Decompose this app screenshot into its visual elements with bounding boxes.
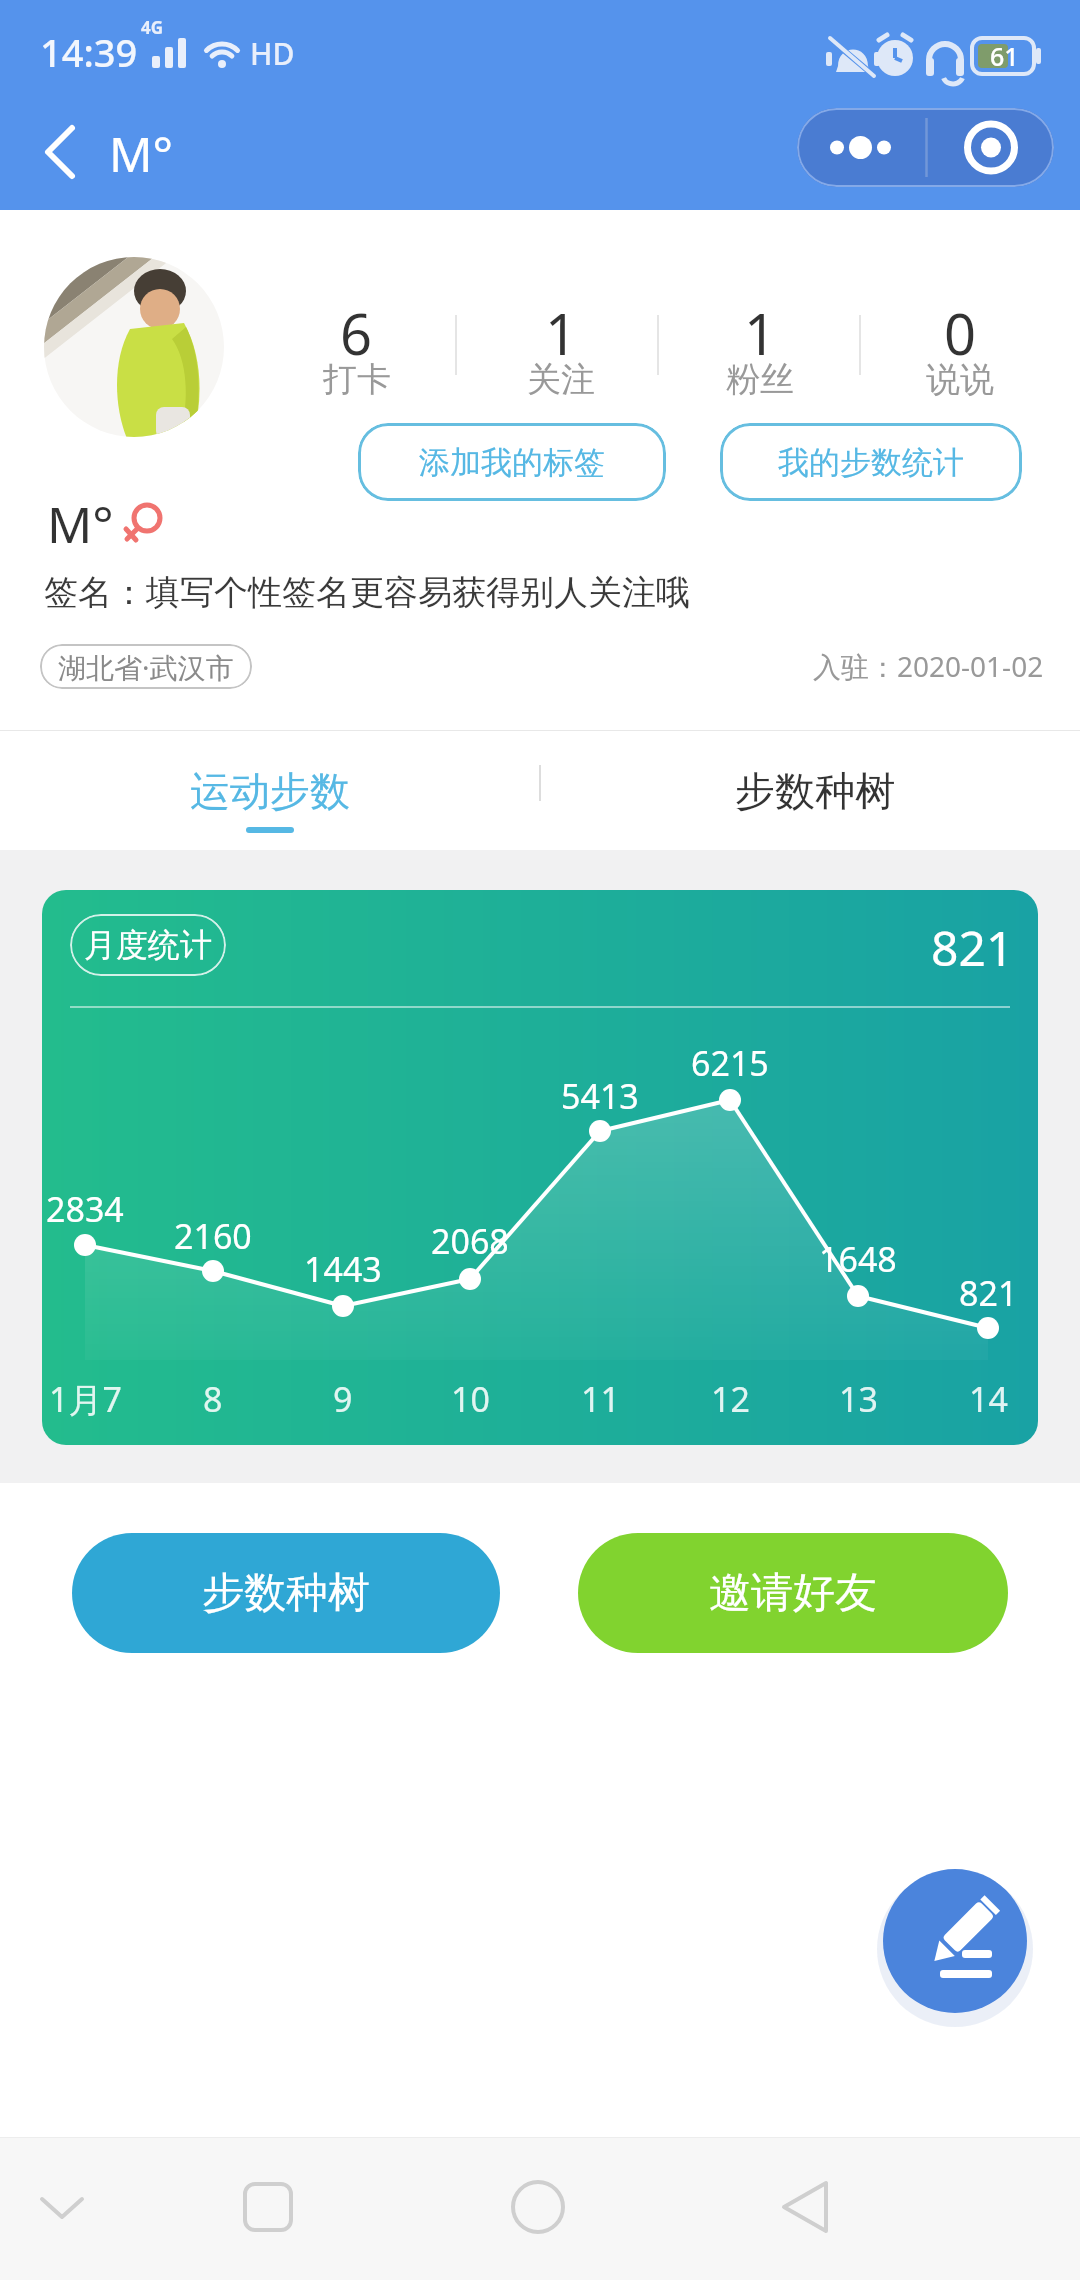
button[interactable]: 我的步数统计 — [720, 423, 1022, 501]
staticText: 1 — [545, 295, 578, 365]
button[interactable]: 步数种树 — [72, 1533, 500, 1653]
staticText: 61 — [990, 39, 1019, 73]
staticText: 我的步数统计 — [778, 443, 964, 482]
staticText: 1443 — [304, 1246, 382, 1290]
staticText: 13 — [839, 1376, 878, 1420]
staticText: 步数种树 — [202, 1567, 370, 1620]
button[interactable] — [810, 2137, 1080, 2280]
staticText: 关注 — [527, 358, 595, 401]
button[interactable] — [270, 2137, 540, 2280]
staticText: 2068 — [431, 1218, 509, 1262]
staticText: HD — [250, 33, 295, 73]
button[interactable] — [40, 122, 84, 182]
staticText: 821 — [931, 915, 1014, 979]
staticText: 5413 — [561, 1073, 639, 1117]
staticText: 1648 — [819, 1236, 897, 1280]
staticText: 邀请好友 — [709, 1567, 877, 1620]
staticText: 14 — [969, 1376, 1008, 1420]
staticText: 入驻：2020-01-02 — [813, 647, 1044, 685]
button[interactable]: 邀请好友 — [578, 1533, 1008, 1653]
button[interactable]: 步数种树 — [540, 731, 1080, 850]
staticText: 14:39 — [40, 26, 138, 78]
staticText: 打卡 — [323, 358, 391, 401]
button[interactable] — [540, 2137, 810, 2280]
button[interactable] — [883, 1869, 1027, 2013]
button[interactable]: 运动步数 — [0, 731, 540, 850]
button[interactable] — [925, 108, 1054, 187]
staticText: 1月7 — [49, 1376, 122, 1420]
button[interactable]: 添加我的标签 — [358, 423, 666, 501]
staticText: 0 — [944, 295, 977, 365]
button[interactable] — [797, 108, 925, 187]
staticText: 8 — [203, 1376, 223, 1420]
staticText: 821 — [959, 1270, 1018, 1314]
staticText: 6215 — [691, 1040, 769, 1084]
staticText: 12 — [711, 1376, 750, 1420]
staticText: 2834 — [46, 1186, 124, 1230]
staticText: M° — [109, 121, 174, 181]
staticText: 说说 — [926, 358, 994, 401]
staticText: 签名：填写个性签名更容易获得别人关注哦 — [44, 571, 690, 614]
button[interactable] — [0, 2137, 270, 2280]
staticText: 4G — [141, 16, 164, 39]
staticText: 11 — [581, 1376, 620, 1420]
staticText: 添加我的标签 — [419, 443, 605, 482]
staticText: 粉丝 — [726, 358, 794, 401]
staticText: 6 — [340, 295, 373, 365]
staticText: 步数种树 — [735, 766, 895, 816]
staticText: 运动步数 — [190, 766, 350, 816]
staticText: 湖北省·武汉市 — [58, 648, 234, 686]
staticText: 10 — [451, 1376, 490, 1420]
staticText: 1 — [744, 295, 777, 365]
staticText: 2160 — [174, 1213, 252, 1257]
staticText: 月度统计 — [84, 925, 212, 965]
staticText: M° — [47, 490, 114, 550]
staticText: 9 — [333, 1376, 353, 1420]
